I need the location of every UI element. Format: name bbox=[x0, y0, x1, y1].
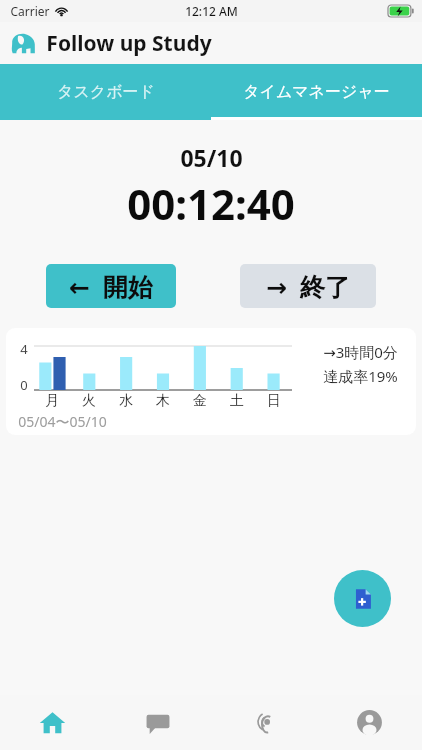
button[interactable]: タスクボード bbox=[0, 64, 211, 120]
button[interactable]: タイムマネージャー bbox=[211, 64, 422, 120]
button[interactable]: → 終了 bbox=[240, 264, 376, 308]
staticText: 00:12:40 bbox=[127, 175, 295, 232]
button[interactable]: New document bbox=[334, 570, 391, 627]
staticText: → 終了 bbox=[266, 269, 350, 303]
staticText: Carrier bbox=[10, 3, 50, 19]
button[interactable]: Hearing bbox=[210, 695, 316, 750]
staticText: タスクボード bbox=[57, 82, 155, 102]
staticText: →3時間0分 bbox=[323, 342, 398, 362]
staticText: 土 bbox=[230, 392, 244, 410]
staticText: 月 bbox=[45, 392, 59, 410]
button[interactable]: ← 開始 bbox=[46, 264, 176, 308]
staticText: 4 bbox=[20, 340, 28, 358]
staticText: Follow up Study bbox=[46, 29, 212, 58]
staticText: 金 bbox=[193, 392, 207, 410]
staticText: タイムマネージャー bbox=[243, 82, 390, 102]
button[interactable]: Home bbox=[0, 695, 105, 750]
staticText: 水 bbox=[119, 392, 133, 410]
staticText: 0 bbox=[20, 376, 28, 394]
staticText: 日 bbox=[267, 392, 281, 410]
staticText: 05/10 bbox=[180, 142, 243, 173]
staticText: 05/04〜05/10 bbox=[18, 412, 107, 431]
staticText: 達成率19% bbox=[323, 366, 398, 386]
button[interactable]: Account bbox=[316, 695, 422, 750]
staticText: ← 開始 bbox=[69, 269, 153, 303]
staticText: 12:12 AM bbox=[185, 3, 238, 19]
button[interactable]: 4 bbox=[6, 328, 416, 435]
staticText: 火 bbox=[82, 392, 96, 410]
button[interactable]: Messages bbox=[105, 695, 210, 750]
staticText: 木 bbox=[156, 392, 170, 410]
